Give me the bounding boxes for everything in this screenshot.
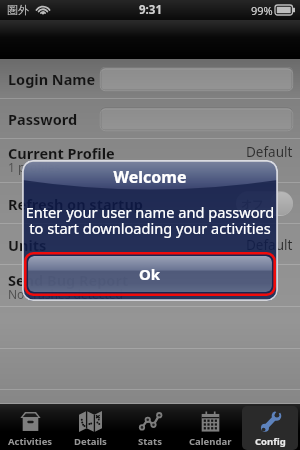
- staticText: Enter your user name and password to sta…: [23, 202, 277, 239]
- button[interactable]: Units: [0, 224, 300, 265]
- staticText: 圏外: [7, 3, 29, 17]
- staticText: Ok: [139, 264, 161, 284]
- staticText: Login Name: [8, 69, 96, 89]
- button[interactable]: Stats: [122, 406, 178, 450]
- button[interactable]: Password: [0, 99, 300, 139]
- button[interactable]: Refresh on startup: [0, 183, 300, 224]
- button[interactable]: Current Profile: [0, 139, 300, 183]
- button[interactable]: Send Bug Report: [0, 265, 300, 307]
- button[interactable]: Activities: [2, 406, 58, 450]
- staticText: 9:31: [139, 2, 162, 18]
- staticText: Send Bug Report: [8, 270, 129, 290]
- staticText: Units: [8, 235, 47, 255]
- button[interactable]: Ok: [24, 252, 276, 296]
- button[interactable]: Login Name: [0, 59, 300, 99]
- staticText: Default: [246, 236, 293, 254]
- staticText: Default: [246, 143, 293, 161]
- staticText: Password: [8, 109, 78, 129]
- staticText: Refresh on startup: [8, 194, 143, 214]
- staticText: Current Profile: [8, 143, 115, 163]
- staticText: オフ: [241, 197, 264, 211]
- button[interactable]: Refresh on startup toggle: [236, 191, 293, 216]
- button[interactable]: Details: [62, 406, 118, 450]
- staticText: Details: [74, 435, 107, 448]
- staticText: No crashes detected: [8, 286, 123, 302]
- staticText: Activities: [8, 435, 53, 448]
- button[interactable]: Config: [242, 406, 298, 450]
- staticText: Calendar: [189, 435, 232, 448]
- button[interactable]: Calendar: [182, 406, 238, 450]
- staticText: Stats: [138, 435, 162, 448]
- staticText: 99%: [251, 3, 273, 18]
- staticText: 1 profiles: [8, 159, 61, 175]
- staticText: Welcome: [22, 166, 278, 188]
- staticText: Config: [255, 435, 286, 448]
